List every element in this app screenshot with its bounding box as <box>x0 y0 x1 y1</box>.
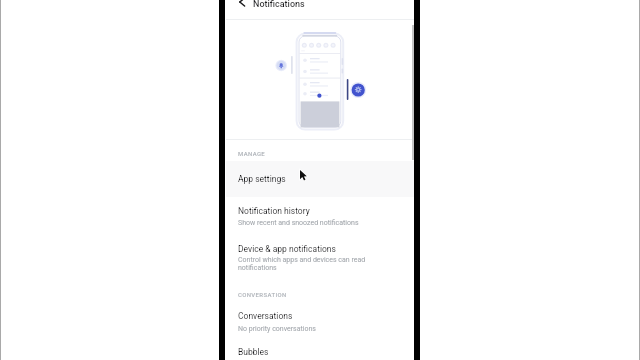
staticText: Control which apps and devices can read … <box>238 256 378 272</box>
staticText: Notification history <box>238 206 310 216</box>
button[interactable]: Bubbles <box>226 339 414 360</box>
button[interactable]: Navigate up <box>231 0 253 13</box>
button[interactable] <box>226 161 414 197</box>
staticText: Show recent and snoozed notifications <box>238 219 359 227</box>
button[interactable]: Device & app notifications <box>226 234 414 282</box>
staticText: CONVERSATION <box>238 291 287 298</box>
staticText: Notifications <box>253 0 305 10</box>
staticText: Conversations <box>238 311 293 321</box>
staticText: MANAGE <box>238 150 266 157</box>
staticText: Device & app notifications <box>238 244 336 254</box>
button[interactable]: Notification history <box>226 197 414 234</box>
staticText: Bubbles <box>238 347 269 357</box>
staticText: No priority conversations <box>238 325 316 333</box>
button[interactable]: Conversations <box>226 302 414 339</box>
button[interactable]: App settings <box>226 161 414 197</box>
staticText: App settings <box>238 174 286 184</box>
